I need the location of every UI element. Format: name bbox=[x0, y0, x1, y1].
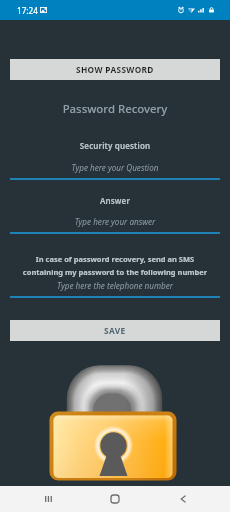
staticText: In case of password recovery, send an SM… bbox=[12, 254, 218, 277]
staticText: Type here the telephone number bbox=[10, 280, 220, 291]
button[interactable]: Recent apps bbox=[28, 486, 68, 512]
button[interactable]: SAVE bbox=[10, 320, 220, 341]
staticText: SAVE bbox=[104, 325, 126, 336]
staticText: Password Recovery bbox=[0, 101, 230, 117]
button[interactable]: Type here the telephone number bbox=[10, 280, 220, 298]
button[interactable]: Type here your Question bbox=[10, 162, 220, 180]
staticText: 17:24 bbox=[17, 5, 38, 16]
staticText: Type here your Question bbox=[10, 162, 220, 173]
staticText: Security question bbox=[0, 140, 230, 151]
staticText: SHOW PASSWORD bbox=[76, 64, 154, 75]
button[interactable]: Back bbox=[163, 486, 203, 512]
button[interactable]: Type here your answer bbox=[10, 216, 220, 234]
button[interactable]: SHOW PASSWORD bbox=[10, 59, 220, 80]
staticText: Answer bbox=[0, 195, 230, 206]
button[interactable]: Home bbox=[95, 486, 135, 512]
staticText: Type here your answer bbox=[10, 216, 220, 227]
